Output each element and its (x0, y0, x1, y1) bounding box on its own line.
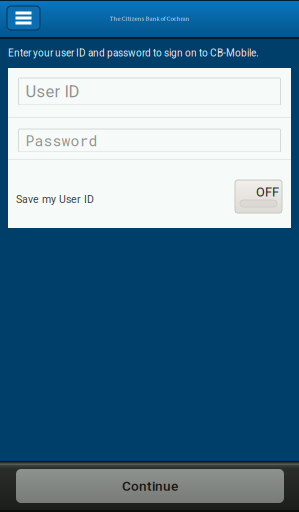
button[interactable]: Menu (0, 0, 40, 30)
staticText: The Citizens Bank of Cochran (109, 14, 189, 22)
button[interactable]: Continue (0, 461, 284, 503)
staticText: Save my User ID (16, 193, 94, 206)
button[interactable]: Save my User ID, off (235, 180, 282, 213)
staticText: Password (25, 131, 97, 150)
staticText: Continue (122, 478, 178, 494)
staticText: User ID (25, 82, 79, 101)
staticText: OFF (256, 184, 279, 199)
staticText: Enter your user ID and password to sign … (8, 47, 259, 59)
